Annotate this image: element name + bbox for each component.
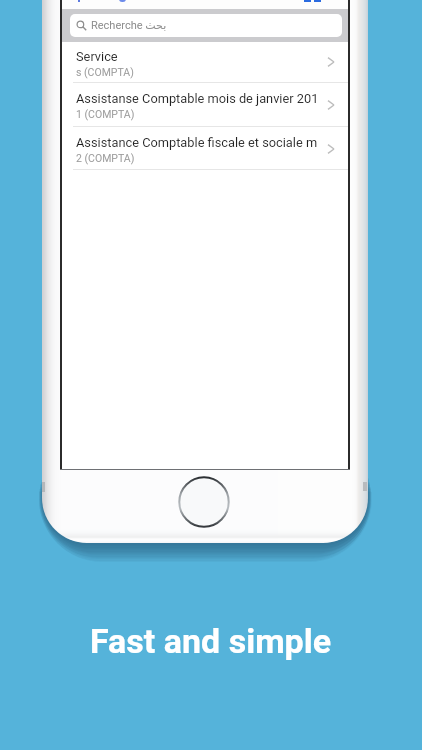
button[interactable]: Assistance Comptable fiscale et sociale … xyxy=(62,127,348,170)
staticText: 2 (COMPTA) xyxy=(76,152,135,164)
staticText: 1 (COMPTA) xyxy=(76,108,135,120)
button[interactable]: Service xyxy=(62,41,348,83)
button[interactable]: Assistanse Comptable mois de janvier 201 xyxy=(62,83,348,127)
staticText: Service xyxy=(76,49,118,64)
staticText: Assistanse Comptable mois de janvier 201 xyxy=(76,91,319,106)
staticText: s (COMPTA) xyxy=(76,66,134,78)
staticText: Assistance Comptable fiscale et sociale … xyxy=(76,135,318,150)
button[interactable]: Recherche بحث xyxy=(70,14,342,37)
staticText: Fast and simple xyxy=(90,621,332,661)
other: Home xyxy=(178,476,230,528)
staticText: Recherche بحث xyxy=(91,19,167,32)
